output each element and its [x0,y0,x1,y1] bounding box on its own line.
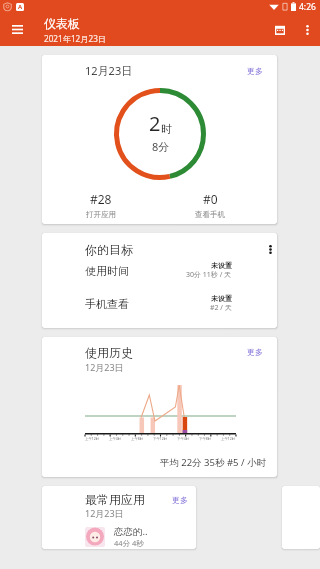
staticText: 手机查看 [85,297,129,311]
staticText: #0 [203,191,218,207]
staticText: 查看手机 [195,210,225,219]
staticText: 下午4时 [177,436,190,441]
staticText: 上午12时 [221,436,236,441]
button[interactable]: Menu [0,13,34,46]
button[interactable]: 更多 [245,64,265,78]
staticText: 44分 4秒 [114,538,144,548]
staticText: 上午4时 [109,436,122,441]
button[interactable]: #0 [155,191,265,219]
staticText: 最常用应用 [85,492,145,507]
staticText: A [18,3,23,11]
staticText: 平均 22分 35秒 #5 / 小时 [42,456,266,469]
button[interactable]: 更多 [170,493,190,507]
staticText: 更多 [172,495,188,505]
staticText: 12月23日 [85,507,124,519]
staticText: 下午8时 [199,436,212,441]
button[interactable]: Goal options [264,241,276,257]
staticText: 12月23日 [85,63,133,78]
button[interactable]: #28 [46,191,155,219]
button[interactable]: More options [294,13,320,46]
button[interactable]: 使用时间 [42,261,277,280]
staticText: #2 / 天 [210,303,232,313]
button[interactable]: 更多 [245,345,265,359]
staticText: 更多 [247,66,263,76]
staticText: 仪表板 [44,16,80,31]
staticText: 2 [149,110,161,137]
staticText: 恋恋的.. [114,525,148,538]
staticText: 更多 [247,347,263,357]
staticText: 12月23日 [85,361,124,373]
button[interactable]: Calendar [266,13,294,46]
staticText: 2021年12月23日 [44,33,107,44]
staticText: 上午8时 [131,436,144,441]
staticText: 未设置 [211,261,232,270]
staticText: 8分 [152,139,170,154]
staticText: 未设置 [211,294,232,303]
staticText: 4:26 [299,1,316,13]
staticText: 时 [161,122,172,136]
staticText: 使用时间 [85,264,129,278]
staticText: 你的目标 [85,242,133,257]
staticText: 打开应用 [86,210,116,219]
staticText: #28 [90,191,112,207]
staticText: 上午12时 [85,436,100,441]
staticText: 30分 11秒 / 天 [186,270,232,280]
button[interactable]: 恋恋的.. [42,525,196,548]
staticText: 下午12时 [153,436,168,441]
button[interactable]: 手机查看 [42,294,277,313]
staticText: 使用历史 [85,345,133,360]
